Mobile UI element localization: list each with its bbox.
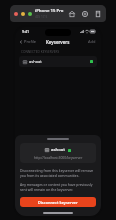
button[interactable]	[28, 12, 32, 16]
button[interactable]: Add	[83, 37, 101, 46]
button[interactable]	[14, 12, 18, 16]
staticText: ashoat	[51, 147, 65, 153]
staticText: Disconnecting from this keyserver will r…	[20, 168, 96, 178]
staticText: Keyservers	[46, 39, 70, 45]
button[interactable]: Settings	[81, 10, 89, 18]
staticText: iPhone 15 Pro	[35, 8, 64, 14]
staticText: Any messages or content you have previou…	[20, 182, 96, 192]
staticText: Profile	[24, 39, 37, 44]
staticText: Add	[88, 39, 96, 44]
button[interactable]: ashoat	[20, 143, 96, 163]
staticText: http://localhost:3000/keyserver	[34, 155, 83, 159]
button[interactable]: Disconnect keyserver	[20, 197, 96, 207]
button[interactable]: ashoat	[19, 56, 97, 67]
staticText: 9:41	[22, 29, 30, 34]
button[interactable]: Home	[68, 10, 76, 18]
staticText: CONNECTED KEYSERVERS	[21, 50, 60, 54]
button[interactable]: Rotate	[94, 10, 102, 18]
staticText: Disconnect keyserver	[38, 200, 78, 205]
button[interactable]	[21, 12, 25, 16]
staticText: iOS 17.5	[35, 15, 48, 19]
button[interactable]: Profile	[15, 37, 39, 46]
staticText: ashoat	[29, 59, 42, 64]
button[interactable]	[47, 138, 69, 140]
